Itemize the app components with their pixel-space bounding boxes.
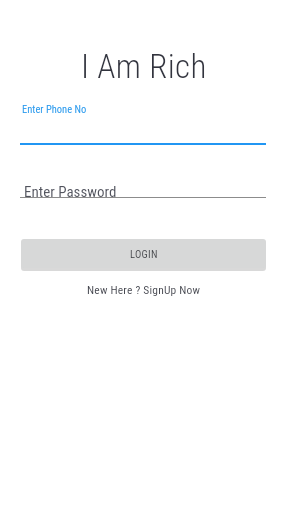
button[interactable]: Enter Phone No <box>20 98 266 146</box>
staticText: Enter Phone No <box>22 103 87 115</box>
button[interactable]: New Here ? SignUp Now <box>87 283 201 296</box>
staticText: Enter Password <box>24 183 117 201</box>
staticText: I Am Rich <box>81 47 207 86</box>
button[interactable]: Enter Password <box>20 170 266 198</box>
staticText: LOGIN <box>130 248 158 260</box>
button[interactable]: LOGIN <box>21 239 266 268</box>
